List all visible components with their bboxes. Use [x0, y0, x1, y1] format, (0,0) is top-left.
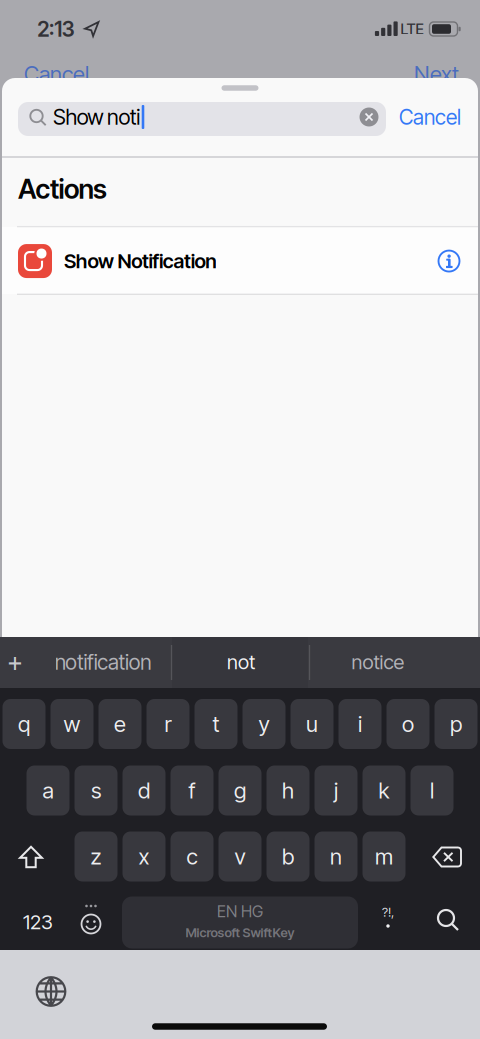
- staticText: notification: [55, 649, 151, 675]
- staticText: s: [91, 777, 101, 804]
- button[interactable]: m: [362, 831, 405, 881]
- staticText: Actions: [18, 173, 107, 205]
- button[interactable]: Next: [0, 0, 480, 1039]
- staticText: j: [334, 777, 338, 804]
- staticText: w: [63, 711, 80, 737]
- button[interactable]: t: [194, 699, 237, 749]
- staticText: Show Notification: [64, 249, 216, 273]
- staticText: Cancel: [399, 104, 461, 130]
- button[interactable]: Cancel: [0, 0, 480, 1039]
- button[interactable]: a: [26, 765, 69, 815]
- staticText: q: [18, 711, 30, 737]
- button[interactable]: o: [386, 699, 429, 749]
- staticText: LTE: [400, 20, 423, 38]
- button[interactable]: [436, 908, 459, 931]
- button[interactable]: Show Notification: [2, 227, 478, 294]
- staticText: z: [90, 843, 101, 870]
- staticText: g: [234, 777, 246, 804]
- button[interactable]: [122, 896, 358, 948]
- button[interactable]: v: [218, 831, 261, 881]
- button[interactable]: +: [0, 0, 480, 1039]
- staticText: u: [306, 711, 318, 737]
- button[interactable]: [438, 251, 459, 272]
- staticText: o: [402, 711, 414, 737]
- button[interactable]: j: [314, 765, 357, 815]
- button[interactable]: b: [266, 831, 309, 881]
- button[interactable]: h: [266, 765, 309, 815]
- staticText: a: [42, 777, 53, 804]
- staticText: Cancel: [24, 61, 89, 87]
- button[interactable]: k: [362, 765, 405, 815]
- button[interactable]: [19, 846, 42, 868]
- button[interactable]: [80, 913, 102, 935]
- staticText: Microsoft SwiftKey: [185, 925, 294, 940]
- staticText: r: [164, 711, 171, 737]
- button[interactable]: Cancel: [0, 0, 480, 1039]
- button[interactable]: r: [146, 699, 189, 749]
- staticText: Next: [414, 61, 459, 87]
- button[interactable]: x: [122, 831, 165, 881]
- staticText: k: [378, 777, 389, 804]
- button[interactable]: 123: [0, 0, 480, 1039]
- button[interactable]: z: [74, 831, 117, 881]
- button[interactable]: p: [434, 699, 477, 749]
- staticText: c: [186, 843, 197, 870]
- button[interactable]: l: [410, 765, 453, 815]
- button[interactable]: y: [242, 699, 285, 749]
- staticText: p: [450, 711, 462, 737]
- button[interactable]: c: [170, 831, 213, 881]
- button[interactable]: i: [338, 699, 381, 749]
- staticText: d: [138, 777, 150, 804]
- staticText: notice: [351, 650, 404, 674]
- button[interactable]: notification: [0, 0, 480, 1039]
- button[interactable]: notice: [0, 0, 480, 1039]
- staticText: b: [282, 843, 294, 870]
- staticText: h: [282, 777, 294, 804]
- staticText: 123: [23, 910, 53, 934]
- staticText: not: [227, 650, 255, 674]
- button[interactable]: n: [314, 831, 357, 881]
- button[interactable]: d: [122, 765, 165, 815]
- staticText: i: [358, 711, 362, 737]
- staticText: v: [234, 843, 245, 870]
- staticText: m: [375, 843, 393, 870]
- button[interactable]: w: [50, 699, 93, 749]
- button[interactable]: s: [74, 765, 117, 815]
- staticText: x: [138, 843, 149, 870]
- staticText: f: [188, 777, 195, 804]
- staticText: y: [258, 711, 269, 737]
- button[interactable]: ?!,: [374, 904, 402, 932]
- staticText: 2:13: [37, 16, 75, 42]
- staticText: Show noti: [53, 104, 140, 130]
- button[interactable]: [359, 107, 378, 126]
- staticText: ?!,: [382, 904, 394, 920]
- button[interactable]: [35, 975, 67, 1007]
- staticText: n: [330, 843, 342, 870]
- button[interactable]: q: [2, 699, 45, 749]
- staticText: e: [114, 711, 126, 737]
- staticText: t: [212, 711, 219, 737]
- button[interactable]: e: [98, 699, 141, 749]
- button[interactable]: [432, 846, 461, 867]
- staticText: +: [7, 646, 23, 678]
- button[interactable]: f: [170, 765, 213, 815]
- button[interactable]: u: [290, 699, 333, 749]
- button[interactable]: g: [218, 765, 261, 815]
- button[interactable]: not: [0, 0, 480, 1039]
- staticText: l: [430, 777, 434, 804]
- staticText: EN HG: [217, 902, 263, 921]
